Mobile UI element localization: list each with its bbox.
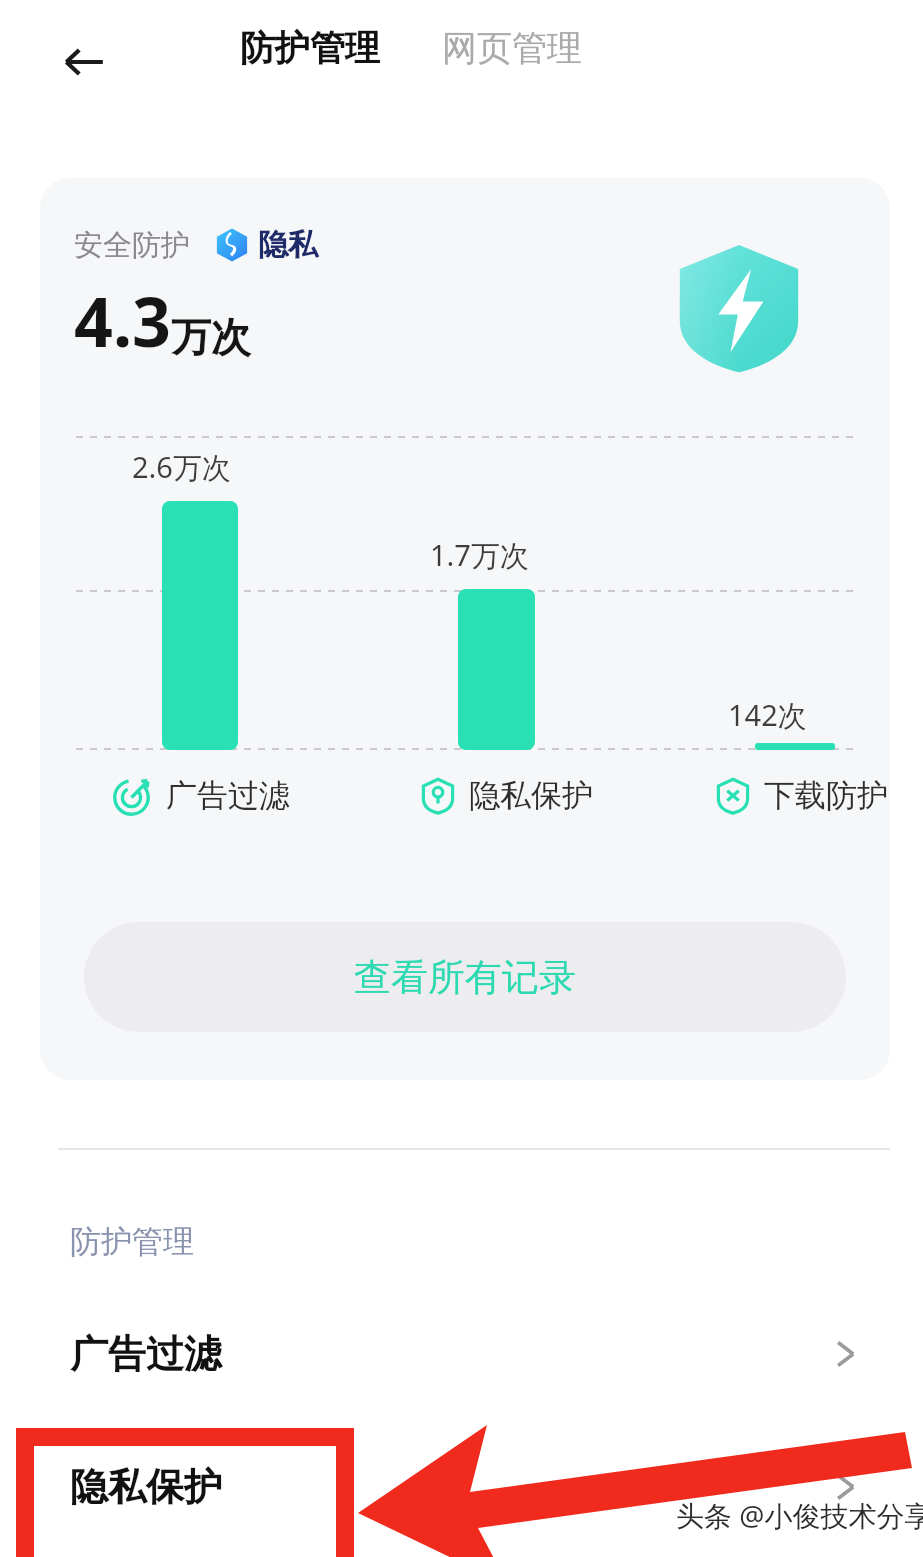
staticText: 1.7万次	[430, 535, 529, 575]
button[interactable]: 隐私保护	[0, 1443, 923, 1539]
staticText: 防护管理	[70, 1222, 194, 1261]
staticText: 隐私保护	[70, 1463, 222, 1511]
staticText: 万次	[171, 312, 251, 362]
staticText: 隐私	[258, 226, 318, 264]
button[interactable]: 广告过滤	[0, 1310, 923, 1406]
button[interactable]: 防护管理	[240, 26, 380, 70]
staticText: 隐私保护	[469, 776, 593, 815]
button[interactable]: 查看所有记录	[84, 922, 846, 1032]
staticText: 网页管理	[442, 26, 582, 70]
button[interactable]: 网页管理	[442, 26, 582, 70]
staticText: 防护管理	[240, 26, 380, 70]
staticText: 头条 @小俊技术分享	[676, 1496, 923, 1534]
staticText: 2.6万次	[132, 447, 231, 487]
staticText: 查看所有记录	[354, 954, 576, 1001]
staticText: 下载防护	[764, 776, 888, 815]
staticText: 4.3	[74, 274, 171, 367]
staticText: 广告过滤	[166, 776, 290, 815]
button[interactable]: Back	[50, 28, 118, 96]
staticText: 142次	[728, 695, 807, 735]
staticText: 广告过滤	[70, 1330, 222, 1378]
staticText: 安全防护	[74, 227, 190, 264]
